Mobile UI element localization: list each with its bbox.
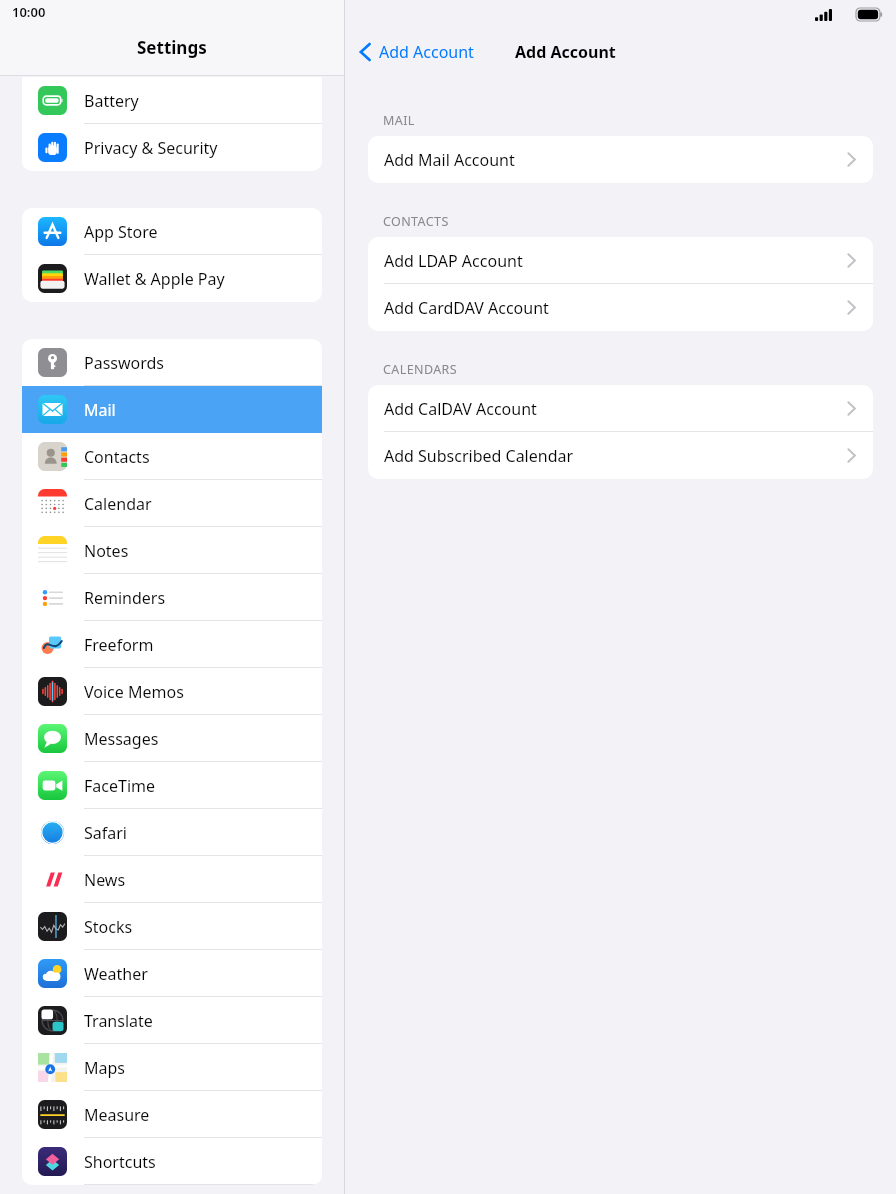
button[interactable]: Wallet & Apple Pay — [22, 255, 322, 302]
button[interactable]: Add Subscribed Calendar — [368, 432, 873, 479]
staticText: Voice Memos — [84, 681, 184, 703]
staticText: Add Subscribed Calendar — [384, 445, 574, 467]
other: Battery full — [856, 8, 882, 21]
button[interactable]: Safari — [22, 809, 322, 856]
button[interactable]: Add CardDAV Account — [368, 284, 873, 331]
button[interactable]: FaceTime — [22, 762, 322, 809]
staticText: Stocks — [84, 916, 133, 938]
button[interactable]: Contacts — [22, 433, 322, 480]
button[interactable]: Reminders — [22, 574, 322, 621]
staticText: Battery — [84, 90, 139, 112]
button[interactable]: Passwords — [22, 339, 322, 386]
button[interactable]: Maps — [22, 1044, 322, 1091]
button[interactable]: Messages — [22, 715, 322, 762]
staticText: Weather — [84, 963, 148, 985]
staticText: Calendar — [84, 493, 152, 515]
other: Cellular signal — [815, 9, 832, 21]
staticText: Translate — [84, 1010, 153, 1032]
staticText: CONTACTS — [383, 213, 449, 230]
staticText: Measure — [84, 1104, 150, 1126]
staticText: Messages — [84, 728, 159, 750]
staticText: Shortcuts — [84, 1151, 156, 1173]
staticText: MAIL — [383, 112, 415, 129]
staticText: Add CalDAV Account — [384, 398, 537, 420]
staticText: Notes — [84, 540, 129, 562]
button[interactable]: Mail — [22, 386, 322, 433]
staticText: Maps — [84, 1057, 125, 1079]
button[interactable]: Weather — [22, 950, 322, 997]
staticText: News — [84, 869, 126, 891]
button[interactable]: App Store — [22, 208, 322, 255]
staticText: Contacts — [84, 446, 150, 468]
staticText: 10:00 — [12, 3, 46, 21]
button[interactable]: News — [22, 856, 322, 903]
staticText: FaceTime — [84, 775, 155, 797]
staticText: Settings — [137, 36, 207, 59]
button[interactable]: Add Mail Account — [368, 136, 873, 183]
staticText: CALENDARS — [383, 361, 457, 378]
staticText: Add LDAP Account — [384, 250, 523, 272]
button[interactable]: Stocks — [22, 903, 322, 950]
staticText: Add Account — [515, 41, 616, 63]
staticText: Privacy & Security — [84, 137, 218, 159]
button[interactable]: Notes — [22, 527, 322, 574]
staticText: Freeform — [84, 634, 154, 656]
staticText: Wallet & Apple Pay — [84, 268, 225, 290]
button[interactable]: Privacy & Security — [22, 124, 322, 171]
staticText: Add Mail Account — [384, 149, 515, 171]
button[interactable]: Add Account — [345, 30, 482, 74]
button[interactable]: Translate — [22, 997, 322, 1044]
staticText: Safari — [84, 822, 127, 844]
staticText: Add CardDAV Account — [384, 297, 549, 319]
staticText: App Store — [84, 221, 158, 243]
button[interactable]: Battery — [22, 77, 322, 124]
button[interactable]: Shortcuts — [22, 1138, 322, 1185]
button[interactable]: Calendar — [22, 480, 322, 527]
staticText: Passwords — [84, 352, 165, 374]
staticText: Reminders — [84, 587, 166, 609]
button[interactable]: Add CalDAV Account — [368, 385, 873, 432]
staticText: Add Account — [379, 41, 474, 63]
staticText: Mail — [84, 399, 116, 421]
button[interactable]: Add LDAP Account — [368, 237, 873, 284]
button[interactable]: Voice Memos — [22, 668, 322, 715]
button[interactable]: Measure — [22, 1091, 322, 1138]
button[interactable]: Freeform — [22, 621, 322, 668]
